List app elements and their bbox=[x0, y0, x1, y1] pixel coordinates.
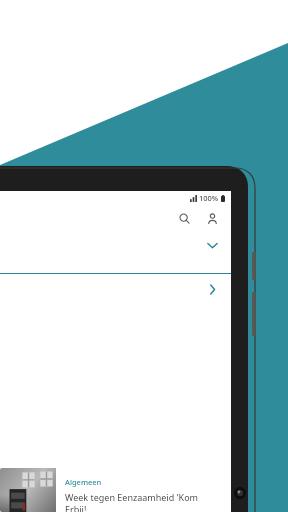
button[interactable]: Account bbox=[200, 206, 224, 230]
staticText: Algemeen bbox=[65, 477, 102, 487]
button[interactable]: Expand bbox=[201, 234, 223, 256]
button[interactable]: Search bbox=[172, 206, 196, 230]
staticText: 100% bbox=[199, 193, 219, 203]
staticText: Week tegen Eenzaamheid 'Kom Erbij! bbox=[65, 491, 221, 512]
button[interactable]: Algemeen bbox=[0, 468, 225, 512]
button[interactable]: Next bbox=[201, 278, 223, 300]
